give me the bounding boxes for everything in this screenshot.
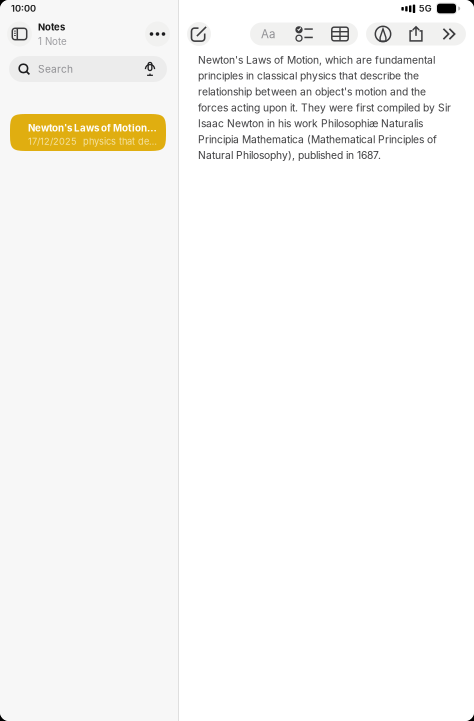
staticText: 17/12/2025 physics that describes the re… xyxy=(28,136,159,147)
staticText: Newton's Laws of Motion, which are funda… xyxy=(198,52,451,163)
staticText: 5G xyxy=(419,3,432,14)
button[interactable]: Text Format xyxy=(250,22,286,45)
button[interactable]: Toggle Sidebar xyxy=(7,21,32,46)
button[interactable]: Newton's Laws of Motion, which are xyxy=(10,114,166,151)
button[interactable]: More Options xyxy=(432,22,465,45)
button[interactable]: Share xyxy=(399,22,432,45)
staticText: Aa xyxy=(261,27,275,41)
button[interactable]: Search xyxy=(9,56,167,82)
button[interactable]: Markup xyxy=(366,22,399,45)
button[interactable]: Compose xyxy=(187,22,211,46)
staticText: 1 Note xyxy=(38,36,67,47)
staticText: Newton's Laws of Motion, which are xyxy=(28,122,159,134)
button[interactable]: Checklist xyxy=(286,22,322,45)
staticText: Search xyxy=(38,63,73,75)
button[interactable]: Table xyxy=(322,22,358,45)
staticText: 10:00 xyxy=(11,3,36,14)
staticText: Notes xyxy=(38,21,65,33)
button[interactable]: More xyxy=(145,21,170,46)
